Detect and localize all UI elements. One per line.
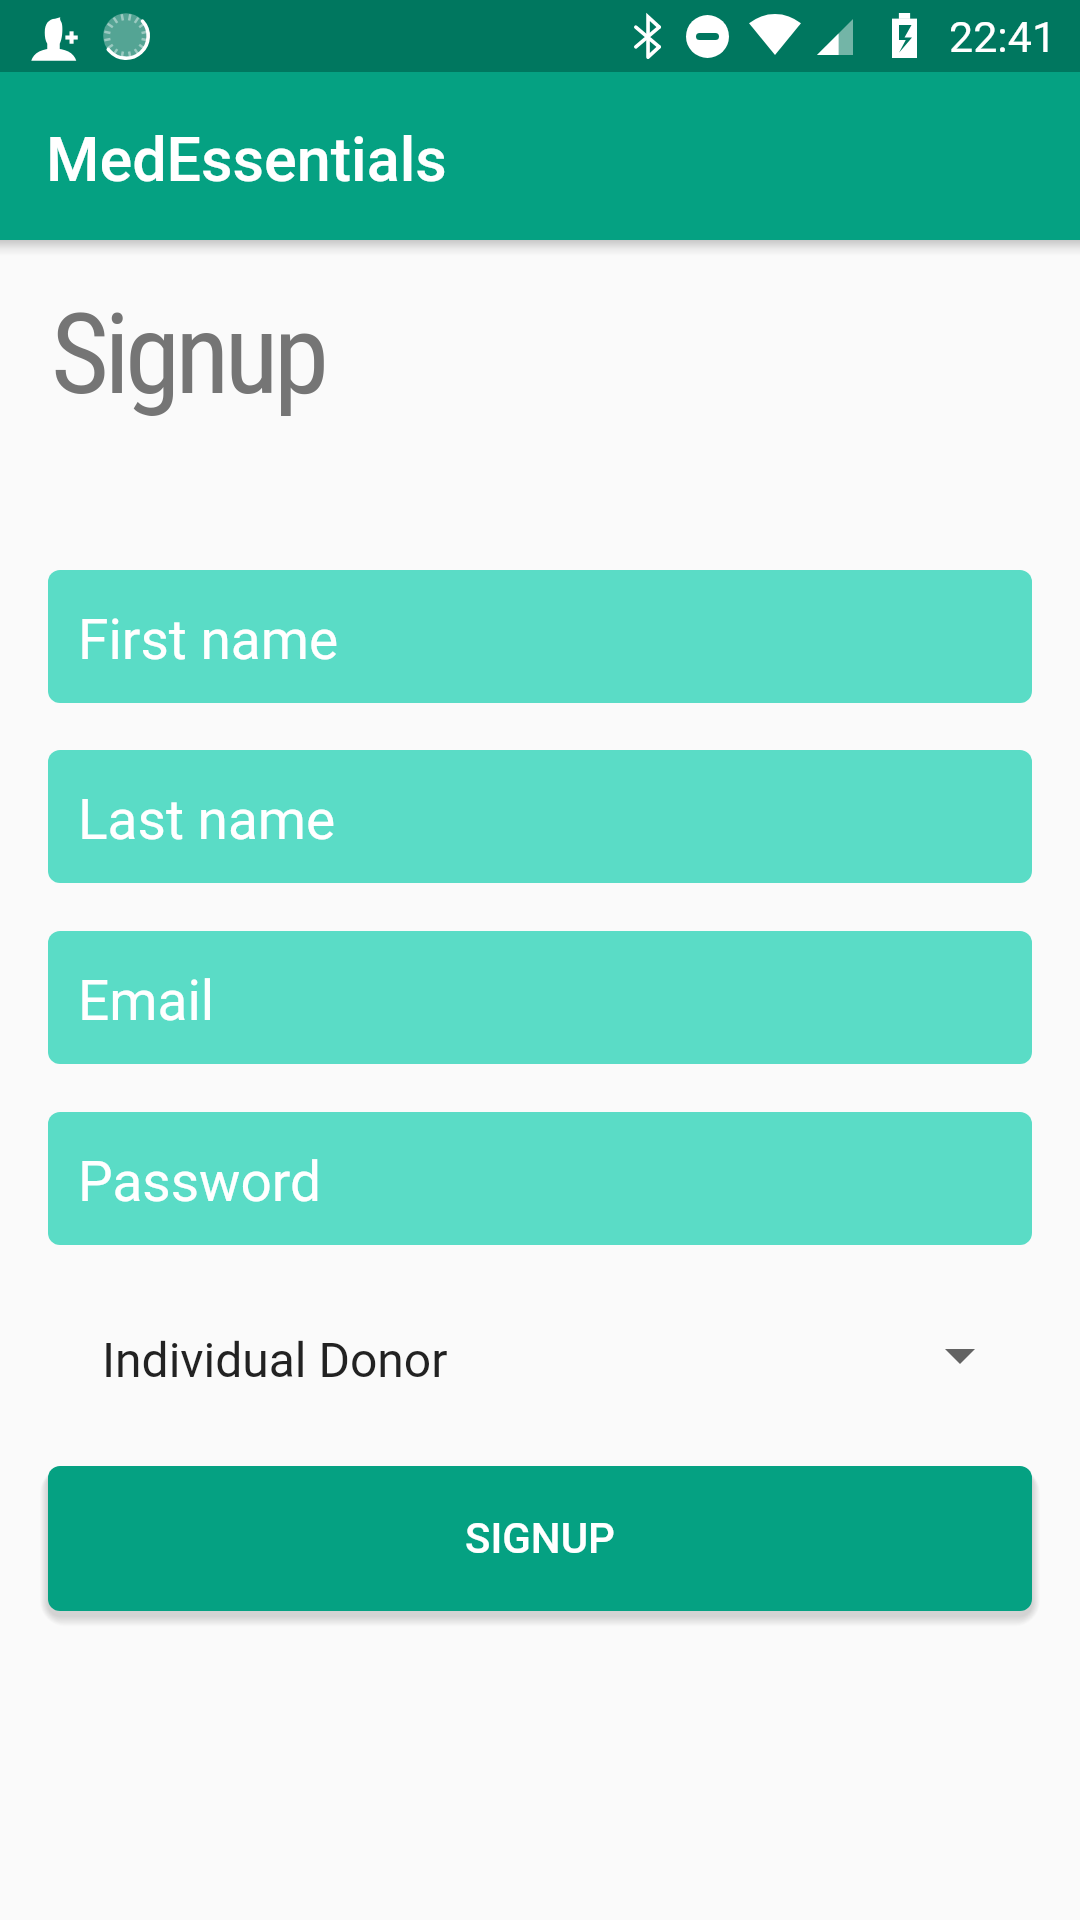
staticText: First name <box>78 608 339 672</box>
button[interactable]: Last name <box>48 750 1032 883</box>
staticText: Password <box>78 1150 321 1214</box>
button[interactable]: Email <box>48 931 1032 1064</box>
button[interactable]: Individual Donor <box>48 1296 1032 1416</box>
button[interactable]: SIGNUP <box>48 1466 1032 1611</box>
staticText: MedEssentials <box>46 124 447 195</box>
button[interactable]: Password <box>48 1112 1032 1245</box>
staticText: Signup <box>51 289 325 420</box>
staticText: Last name <box>78 788 336 852</box>
staticText: SIGNUP <box>465 1514 615 1563</box>
button[interactable]: First name <box>48 570 1032 703</box>
staticText: 22:41 <box>949 12 1057 62</box>
other: Open donor type list <box>945 1349 975 1364</box>
staticText: Email <box>78 969 215 1033</box>
staticText: Individual Donor <box>102 1332 448 1388</box>
